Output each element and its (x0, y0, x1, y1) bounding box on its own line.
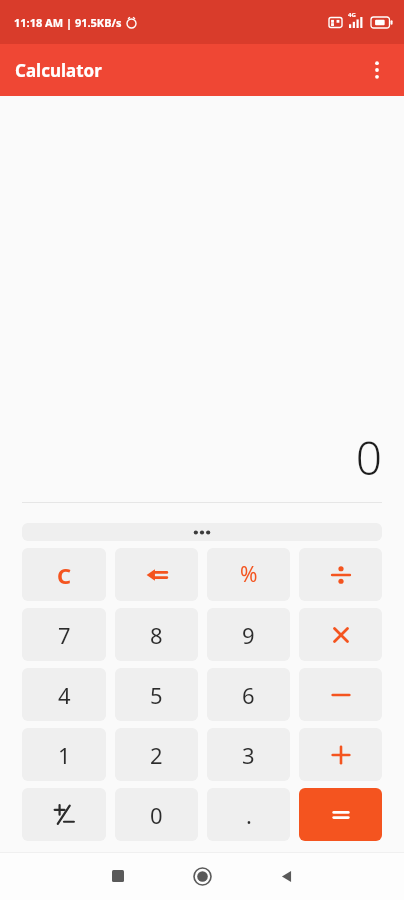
staticText: . (246, 800, 252, 830)
staticText: % (240, 560, 258, 589)
button[interactable]: Expand panel (22, 523, 382, 541)
button[interactable]: Back (264, 854, 308, 898)
staticText: 8 (150, 620, 163, 650)
button[interactable]: 7 (22, 608, 106, 661)
button[interactable]: Backspace (115, 548, 198, 601)
button[interactable]: 1 (22, 728, 106, 781)
staticText: 4 (58, 680, 71, 710)
button[interactable]: 8 (115, 608, 198, 661)
staticText: 6 (242, 680, 255, 710)
staticText: C (57, 560, 72, 590)
staticText: 0 (355, 426, 382, 489)
button[interactable]: 5 (115, 668, 198, 721)
button[interactable]: 9 (207, 608, 290, 661)
button[interactable]: Divide (299, 548, 382, 601)
staticText: 11:18 AM | 91.5KB/s (14, 15, 122, 30)
button[interactable]: 4 (22, 668, 106, 721)
button[interactable]: Minus (299, 668, 382, 721)
staticText: Calculator (15, 59, 102, 82)
staticText: 1 (58, 740, 71, 770)
button[interactable]: Plus minus sign (22, 788, 106, 841)
button[interactable]: . (207, 788, 290, 841)
staticText: 4G (348, 11, 356, 19)
staticText: 2 (150, 740, 163, 770)
button[interactable]: C (22, 548, 106, 601)
staticText: 9 (242, 620, 255, 650)
button[interactable]: Multiply (299, 608, 382, 661)
button[interactable]: Plus (299, 728, 382, 781)
button[interactable]: 2 (115, 728, 198, 781)
button[interactable]: More options (356, 49, 398, 91)
staticText: 3 (242, 740, 255, 770)
button[interactable]: % (207, 548, 290, 601)
button[interactable]: Recents (96, 854, 140, 898)
button[interactable]: Home (180, 854, 224, 898)
button[interactable]: 3 (207, 728, 290, 781)
staticText: 0 (150, 800, 163, 830)
button[interactable]: Equals (299, 788, 382, 841)
button[interactable]: 6 (207, 668, 290, 721)
staticText: 7 (58, 620, 71, 650)
button[interactable]: 0 (115, 788, 198, 841)
staticText: 5 (150, 680, 163, 710)
